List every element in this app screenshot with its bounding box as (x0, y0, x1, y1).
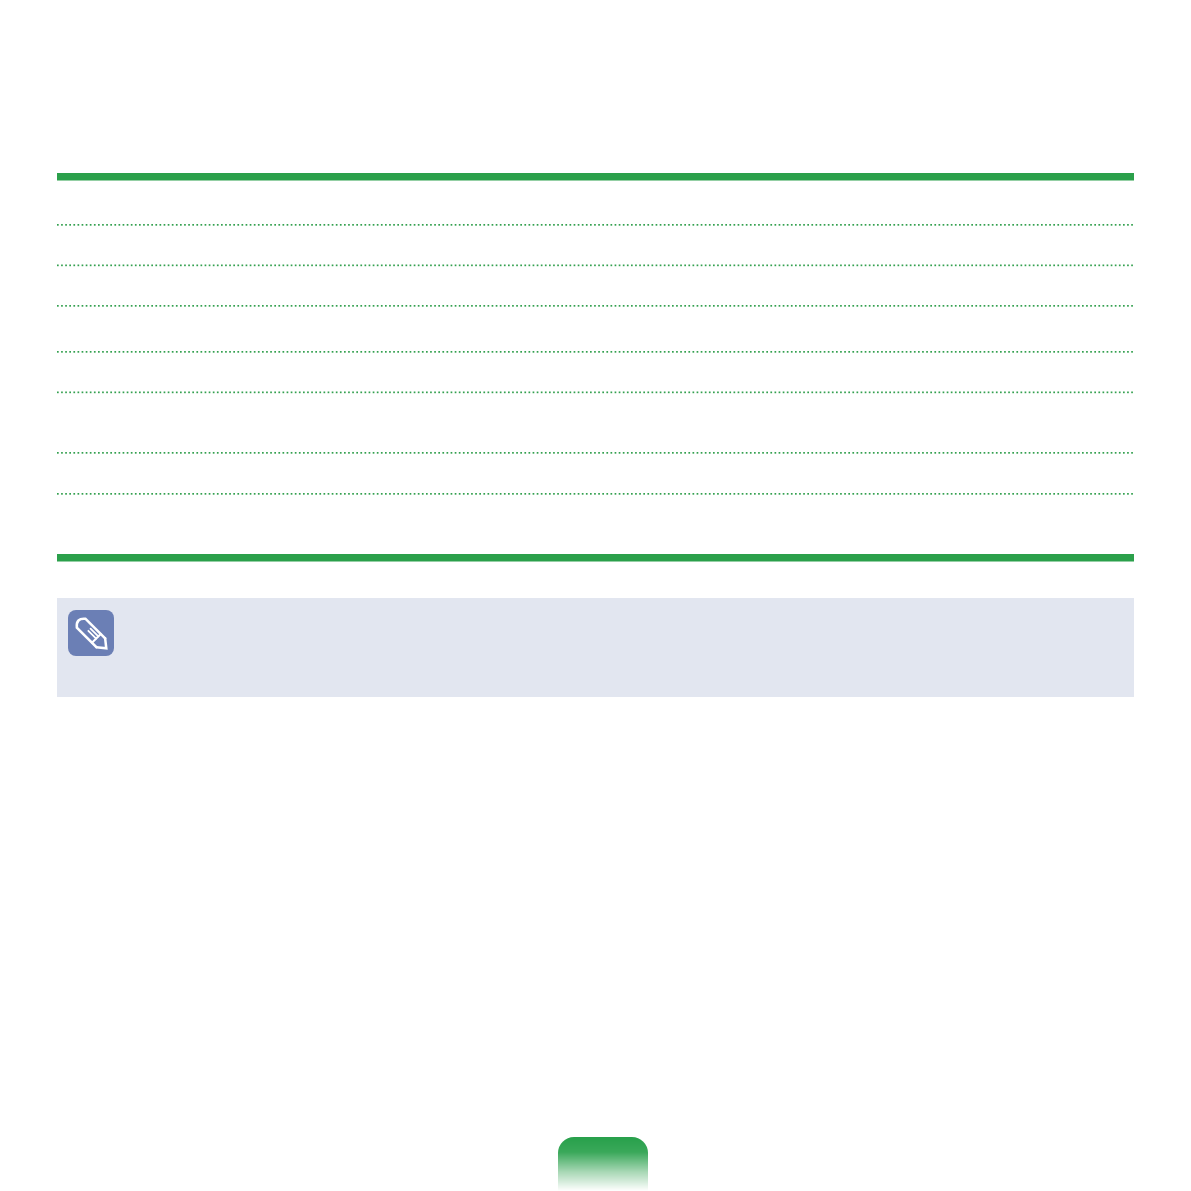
button[interactable]: Note (68, 610, 114, 656)
button[interactable]: Section tab (558, 1137, 648, 1191)
button[interactable] (57, 598, 1134, 697)
